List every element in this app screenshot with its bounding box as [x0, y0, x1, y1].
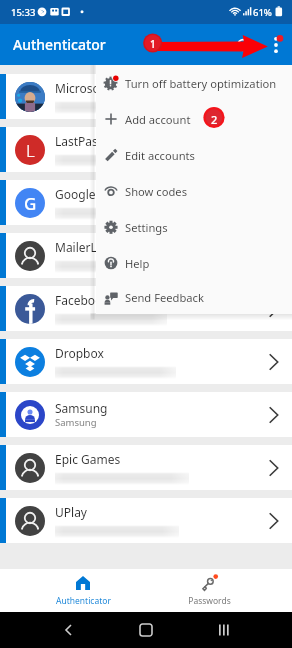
staticText: Microsoft: [55, 80, 109, 96]
button[interactable]: Passwords: [146, 569, 272, 612]
staticText: Authenticator: [56, 595, 111, 607]
button[interactable]: Settings: [96, 209, 292, 245]
button[interactable]: Microsoft: [0, 74, 292, 119]
button[interactable]: Help: [96, 245, 292, 281]
staticText: Add account: [125, 112, 191, 127]
staticText: Turn off battery optimization: [125, 76, 277, 91]
button[interactable]: Authenticator: [20, 569, 146, 612]
staticText: MailerLite: [55, 239, 112, 255]
button[interactable]: Facebook: [0, 286, 292, 331]
staticText: L: [26, 139, 35, 162]
staticText: 15:33: [11, 6, 36, 19]
staticText: 1: [150, 37, 156, 49]
staticText: UPlay: [55, 504, 87, 520]
staticText: Settings: [125, 220, 168, 235]
staticText: Help: [125, 256, 150, 271]
button[interactable]: Epic Games: [0, 445, 292, 490]
staticText: Dropbox: [55, 345, 104, 361]
staticText: Authenticator: [13, 35, 106, 54]
staticText: Send Feedback: [125, 290, 204, 305]
staticText: Passwords: [188, 595, 231, 607]
button[interactable]: Show codes: [96, 173, 292, 209]
button[interactable]: Samsung: [0, 392, 292, 437]
button[interactable]: More options: [258, 28, 292, 62]
staticText: Epic Games: [55, 451, 121, 467]
staticText: Google: [55, 186, 96, 202]
button[interactable]: Refresh: [228, 30, 258, 60]
button[interactable]: MailerLite: [0, 233, 292, 278]
staticText: 2: [211, 112, 218, 124]
button[interactable]: Edit accounts: [96, 137, 292, 173]
staticText: Samsung: [55, 416, 97, 429]
staticText: Show codes: [125, 184, 187, 199]
staticText: G: [24, 192, 37, 215]
staticText: Samsung: [55, 400, 108, 416]
staticText: Facebook: [55, 292, 109, 308]
button[interactable]: Add account: [96, 101, 292, 137]
button[interactable]: L: [0, 127, 292, 172]
button[interactable]: Turn off battery optimization: [96, 65, 292, 101]
staticText: LastPass: [55, 133, 104, 149]
staticText: 61%: [253, 6, 272, 19]
button[interactable]: Send Feedback: [96, 281, 292, 314]
button[interactable]: UPlay: [0, 498, 292, 543]
staticText: Edit accounts: [125, 148, 195, 163]
button[interactable]: Dropbox: [0, 339, 292, 384]
button[interactable]: G: [0, 180, 292, 225]
